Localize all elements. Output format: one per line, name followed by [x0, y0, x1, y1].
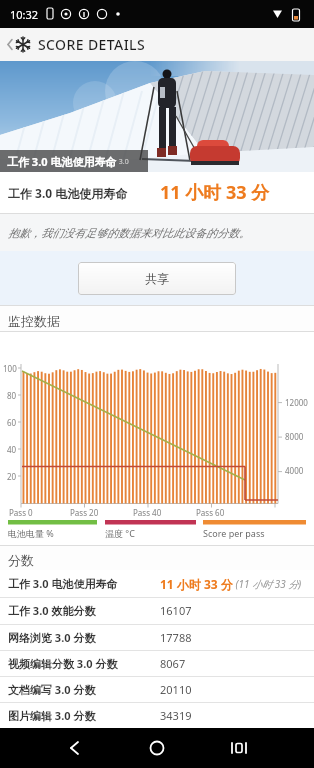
- staticText: 分数: [8, 552, 34, 568]
- staticText: 20110: [160, 682, 192, 697]
- staticText: 8067: [160, 656, 186, 671]
- staticText: 工作 3.0 电池使用寿命: [8, 576, 118, 591]
- button[interactable]: 工作 3.0 电池使用寿命: [0, 570, 314, 597]
- staticText: 11 小时 33 分: [160, 576, 233, 592]
- staticText: 工作 3.0 电池使用寿命: [8, 185, 128, 201]
- button[interactable]: SCORE DETAILS: [0, 28, 314, 61]
- staticText: Pass 40: [133, 507, 162, 518]
- button[interactable]: 工作 3.0 效能分数: [0, 597, 314, 624]
- button[interactable]: [45, 728, 105, 768]
- staticText: 工作 3.0 电池使用寿命: [7, 154, 117, 169]
- staticText: 网络浏览 3.0 分数: [8, 630, 96, 645]
- staticText: Pass 0: [9, 507, 33, 518]
- staticText: 80: [7, 390, 17, 401]
- staticText: SCORE DETAILS: [38, 35, 145, 54]
- staticText: 11 小时 33 分: [160, 180, 270, 205]
- staticText: 电池电量 %: [8, 527, 54, 539]
- staticText: 监控数据: [8, 313, 60, 329]
- staticText: Pass 20: [70, 507, 99, 518]
- staticText: 16107: [160, 603, 192, 618]
- staticText: 视频编辑分数 3.0 分数: [8, 656, 118, 671]
- staticText: 100: [3, 363, 17, 374]
- staticText: 抱歉，我们没有足够的数据来对比此设备的分数。: [8, 226, 250, 240]
- staticText: Score per pass: [203, 527, 265, 539]
- staticText: (11 小时 33 分): [233, 577, 302, 591]
- button[interactable]: [127, 728, 187, 768]
- staticText: 20: [7, 471, 17, 482]
- button[interactable]: 共享: [78, 262, 236, 295]
- staticText: 3.0: [117, 157, 129, 167]
- staticText: 8000: [285, 431, 304, 442]
- staticText: 12000: [285, 397, 308, 408]
- button[interactable]: 网络浏览 3.0 分数: [0, 624, 314, 650]
- staticText: 文档编写 3.0 分数: [8, 682, 96, 697]
- button[interactable]: 视频编辑分数 3.0 分数: [0, 650, 314, 676]
- staticText: 60: [7, 417, 17, 428]
- staticText: 40: [7, 444, 17, 455]
- staticText: 温度 °C: [105, 527, 135, 539]
- staticText: 10:32: [10, 7, 39, 22]
- staticText: 共享: [145, 271, 169, 286]
- staticText: 图片编辑 3.0 分数: [8, 708, 96, 723]
- button[interactable]: 文档编写 3.0 分数: [0, 676, 314, 702]
- button[interactable]: 图片编辑 3.0 分数: [0, 702, 314, 728]
- staticText: 34319: [160, 708, 192, 723]
- staticText: 工作 3.0 效能分数: [8, 603, 96, 618]
- button[interactable]: [209, 728, 269, 768]
- staticText: 17788: [160, 630, 192, 645]
- staticText: 4000: [285, 465, 304, 476]
- staticText: Pass 60: [196, 507, 225, 518]
